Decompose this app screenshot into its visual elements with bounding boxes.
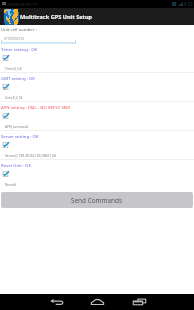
staticText: SEMACHUTE: TV xyxy=(7,2,38,7)
button[interactable]: Send Commands xyxy=(1,192,193,208)
staticText: Server setting : OK xyxy=(1,133,39,139)
staticText: Server,0,198.28.84.100,08821,0# xyxy=(5,153,57,158)
staticText: Send Commands xyxy=(71,196,123,205)
button[interactable]: Reset unit xyxy=(2,170,11,179)
staticText: APN,comcast# xyxy=(5,124,29,129)
staticText: APN setting : FAIL - NO REPLY SMS xyxy=(1,104,71,110)
staticText: GMT setting : OK xyxy=(1,75,35,81)
button[interactable]: Server setting xyxy=(2,141,11,150)
other: App icon xyxy=(3,9,19,25)
button[interactable]: 07700900123 xyxy=(1,33,76,43)
staticText: Reset Unit : OK xyxy=(1,162,32,168)
staticText: Timer setting : OK xyxy=(1,46,38,52)
staticText: 07700900123 xyxy=(4,37,25,41)
button[interactable]: Timer setting xyxy=(2,54,11,63)
button[interactable]: Back xyxy=(43,294,70,310)
staticText: Multitrack GPS Unit Setup xyxy=(20,13,93,21)
staticText: 4:52 xyxy=(184,1,193,7)
button[interactable]: Recent apps xyxy=(126,294,153,310)
button[interactable]: App icon xyxy=(0,8,194,25)
staticText: Gmt,E,2,1# xyxy=(5,95,23,100)
staticText: Timer,2,0# xyxy=(5,66,22,71)
button[interactable]: Home xyxy=(84,294,111,310)
staticText: Reset# xyxy=(5,182,16,187)
button[interactable]: APN setting xyxy=(2,112,11,121)
staticText: Unit cell number : xyxy=(1,26,37,32)
button[interactable]: GMT setting xyxy=(2,83,11,92)
